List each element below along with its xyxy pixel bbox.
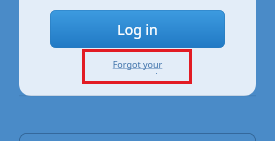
other: Highlight annotation <box>82 49 192 84</box>
staticText: Forgot your password <box>92 58 183 74</box>
button[interactable]: Log in <box>50 10 225 48</box>
staticText: Log in <box>117 20 158 39</box>
button[interactable]: Forgot your password <box>92 58 183 74</box>
